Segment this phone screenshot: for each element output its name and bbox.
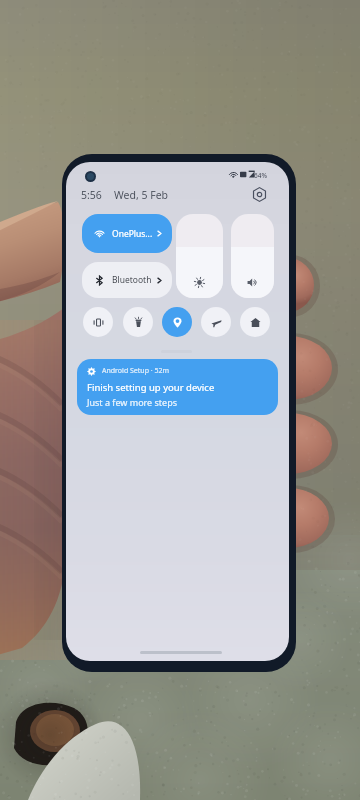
button[interactable]: Flashlight xyxy=(123,307,153,337)
button[interactable]: Sound mode xyxy=(83,307,113,337)
button[interactable]: Settings xyxy=(249,184,269,204)
staticText: Finish setting up your device xyxy=(87,381,215,394)
button[interactable]: Android Setup · 52m xyxy=(77,359,278,415)
button[interactable]: Cast xyxy=(240,307,270,337)
staticText: 5:56 xyxy=(81,188,102,202)
staticText: 64% xyxy=(254,171,267,180)
staticText: OnePlus... xyxy=(112,228,153,240)
button[interactable]: Bluetooth xyxy=(82,262,172,298)
staticText: Bluetooth xyxy=(112,274,152,286)
button[interactable]: Location xyxy=(162,307,192,337)
staticText: Wed, 5 Feb xyxy=(114,188,169,202)
staticText: Just a few more steps xyxy=(87,396,178,408)
staticText: Android Setup · 52m xyxy=(102,366,170,376)
button[interactable]: Slider xyxy=(231,214,274,298)
button[interactable]: Airplane mode xyxy=(201,307,231,337)
button[interactable]: OnePlus... xyxy=(82,214,172,253)
button[interactable]: Slider xyxy=(176,214,223,298)
